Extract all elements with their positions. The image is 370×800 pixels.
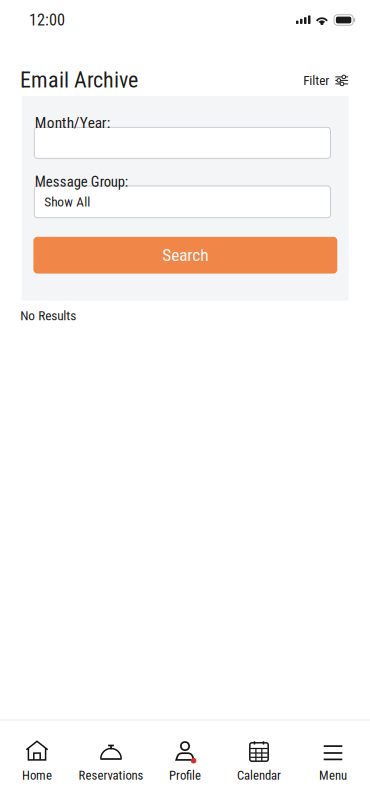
staticText: Menu xyxy=(319,768,347,783)
staticText: 12:00 xyxy=(29,10,65,30)
staticText: Home xyxy=(22,768,52,783)
button[interactable]: Home xyxy=(0,720,74,800)
button[interactable]: Calendar xyxy=(222,720,296,800)
staticText: No Results xyxy=(20,308,76,323)
staticText: Filter xyxy=(303,73,329,88)
staticText: Reservations xyxy=(78,768,143,783)
staticText: Message Group: xyxy=(35,173,128,190)
button[interactable]: Menu xyxy=(296,720,370,800)
staticText: Calendar xyxy=(237,768,281,783)
button[interactable]: Search xyxy=(33,237,337,274)
staticText: Search xyxy=(162,245,208,265)
staticText: Show All xyxy=(44,194,90,210)
staticText: Email Archive xyxy=(20,67,138,93)
button[interactable]: Reservations xyxy=(74,720,148,800)
staticText: Profile xyxy=(169,768,201,783)
staticText: Month/Year: xyxy=(35,114,111,132)
button[interactable]: Profile xyxy=(148,720,222,800)
button[interactable]: Filter xyxy=(303,67,349,88)
button[interactable]: Show All xyxy=(34,186,330,218)
